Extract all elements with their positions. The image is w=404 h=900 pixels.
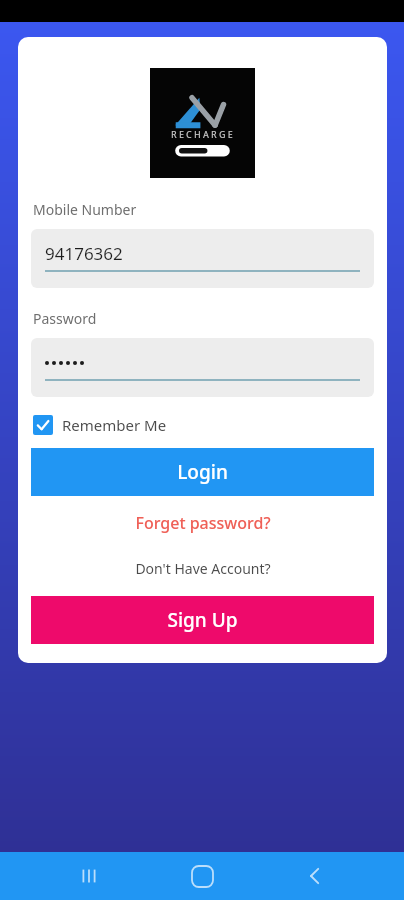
button[interactable]: Recent apps	[65, 852, 113, 900]
staticText: Login	[177, 459, 228, 485]
button[interactable]: Sign Up	[31, 596, 374, 644]
staticText: Sign Up	[167, 607, 238, 633]
button[interactable]: Forget password?	[135, 512, 271, 534]
staticText: Mobile Number	[33, 200, 137, 219]
button[interactable]: 94176362	[31, 229, 374, 288]
button[interactable]: Home	[178, 852, 226, 900]
staticText: Don't Have Account?	[135, 559, 271, 578]
staticText: RECHARGE	[171, 128, 235, 140]
staticText: 94176362	[45, 242, 123, 265]
button[interactable]: Login	[31, 448, 374, 496]
staticText: Remember Me	[62, 415, 167, 435]
button[interactable]	[31, 338, 374, 397]
staticText: Password	[33, 309, 97, 328]
button[interactable]: Back	[291, 852, 339, 900]
button[interactable]: Remember Me	[31, 415, 167, 435]
